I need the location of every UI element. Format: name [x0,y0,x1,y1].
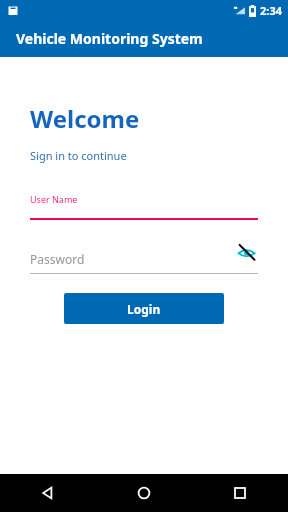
button[interactable]: Show password [234,240,258,264]
staticText: Password [30,251,85,267]
staticText: Welcome [30,102,140,135]
button[interactable]: Login [64,293,224,324]
staticText: Sign in to continue [30,148,127,163]
staticText: Vehicle Monitoring System [16,29,203,48]
staticText: Login [127,301,161,317]
button[interactable]: Recent apps [192,474,288,512]
button[interactable]: User Name [30,193,258,220]
staticText: 2:34 [260,3,282,18]
staticText: User Name [30,193,78,205]
button[interactable]: Password [30,240,258,274]
button[interactable]: Back [0,474,96,512]
button[interactable]: Home [96,474,192,512]
